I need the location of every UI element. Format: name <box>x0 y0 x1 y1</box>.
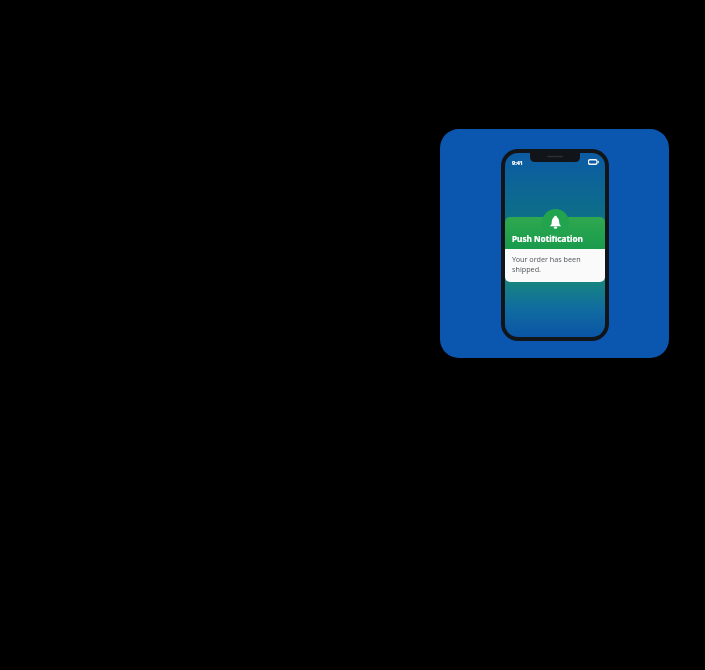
button[interactable]: Notification bell <box>542 209 569 236</box>
staticText: Your order has been shipped. <box>512 254 599 274</box>
button[interactable]: Your order has been shipped. <box>505 249 605 282</box>
staticText: Push Notification <box>512 233 583 244</box>
staticText: 9:41 <box>512 159 523 166</box>
button[interactable]: Push Notification <box>505 217 605 249</box>
